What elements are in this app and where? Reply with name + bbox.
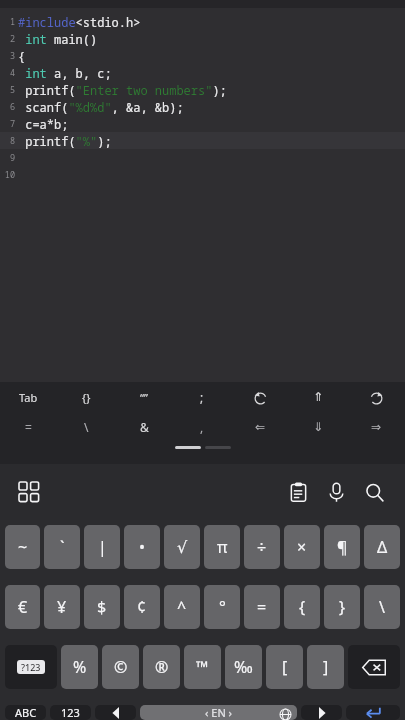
button[interactable]: Move left	[95, 705, 136, 720]
staticText: ®	[155, 656, 169, 678]
button[interactable]: ABC	[5, 705, 46, 720]
staticText: =	[25, 419, 32, 435]
staticText: ⇐	[255, 420, 266, 434]
button[interactable]: °	[204, 585, 240, 629]
button[interactable]: ?123	[5, 645, 57, 689]
button[interactable]: Clipboard	[279, 473, 317, 511]
button[interactable]: ×	[284, 525, 320, 569]
button[interactable]: %	[61, 645, 98, 689]
staticText: ‹ EN ›	[205, 705, 233, 720]
button[interactable]: ^	[164, 585, 200, 629]
button[interactable]: ⇓	[289, 412, 347, 442]
button[interactable]: [	[266, 645, 303, 689]
staticText: ×	[297, 536, 307, 558]
staticText: ⇒	[371, 420, 382, 434]
button[interactable]: Enter	[346, 705, 400, 720]
button[interactable]: ~	[5, 525, 40, 569]
button[interactable]: 3	[0, 47, 405, 64]
button[interactable]: ⇒	[347, 412, 405, 442]
button[interactable]: Tab	[0, 382, 57, 412]
button[interactable]: ]	[307, 645, 344, 689]
staticText: 123	[61, 705, 80, 720]
button[interactable]: •	[124, 525, 160, 569]
staticText: \	[379, 596, 385, 618]
button[interactable]: =	[244, 585, 280, 629]
button[interactable]: 123	[50, 705, 91, 720]
staticText: ;	[200, 389, 204, 405]
staticText: scanf("%d%d", &a, &b);	[18, 99, 184, 115]
button[interactable]: ¥	[44, 585, 80, 629]
button[interactable]: 10	[0, 166, 405, 183]
button[interactable]: 8	[0, 132, 405, 149]
staticText: &	[140, 419, 149, 435]
button[interactable]: &	[115, 412, 173, 442]
button[interactable]: 2	[0, 30, 405, 47]
button[interactable]: Move right	[301, 705, 342, 720]
button[interactable]: ¢	[124, 585, 160, 629]
button[interactable]: Δ	[364, 525, 400, 569]
button[interactable]: ;	[173, 382, 231, 412]
staticText: •	[139, 536, 146, 558]
button[interactable]: $	[84, 585, 120, 629]
button[interactable]: ¶	[324, 525, 360, 569]
staticText: printf("Enter two numbers");	[18, 82, 227, 98]
button[interactable]: |	[84, 525, 120, 569]
staticText: π	[217, 536, 228, 558]
staticText: ⇓	[313, 420, 324, 434]
button[interactable]: ®	[143, 645, 180, 689]
staticText: ⇑	[313, 390, 324, 404]
staticText: 9	[0, 152, 15, 164]
button[interactable]: \	[57, 412, 115, 442]
button[interactable]: Search	[355, 473, 393, 511]
staticText: [	[282, 656, 288, 678]
staticText: {}	[82, 390, 91, 405]
button[interactable]: Redo	[347, 382, 405, 412]
button[interactable]: ⇑	[289, 382, 347, 412]
button[interactable]: `	[44, 525, 80, 569]
staticText: 4	[0, 67, 15, 79]
staticText: ¶	[337, 536, 348, 558]
staticText: %	[73, 656, 87, 678]
staticText: ABC	[15, 705, 37, 720]
staticText: |	[98, 536, 107, 558]
staticText: 8	[0, 135, 15, 147]
button[interactable]: ™	[184, 645, 221, 689]
staticText: ‰	[234, 656, 253, 678]
button[interactable]: “”	[115, 382, 173, 412]
button[interactable]: €	[5, 585, 40, 629]
staticText: €	[18, 596, 28, 618]
button[interactable]: Backspace	[348, 645, 400, 689]
button[interactable]: √	[164, 525, 200, 569]
button[interactable]: \	[364, 585, 400, 629]
staticText: ^	[177, 596, 187, 618]
button[interactable]: Undo	[231, 382, 289, 412]
staticText: “”	[140, 390, 148, 405]
button[interactable]: {}	[57, 382, 115, 412]
staticText: }	[339, 596, 346, 618]
staticText: int main()	[18, 31, 98, 47]
button[interactable]: 6	[0, 98, 405, 115]
button[interactable]: 1	[0, 13, 405, 30]
button[interactable]: ©	[102, 645, 139, 689]
staticText: °	[219, 596, 226, 618]
staticText: {	[299, 596, 306, 618]
button[interactable]: Voice input	[317, 473, 355, 511]
button[interactable]: ⇐	[231, 412, 289, 442]
button[interactable]: Keyboard switcher	[12, 475, 46, 509]
button[interactable]: ,	[173, 412, 231, 442]
button[interactable]: ‰	[225, 645, 262, 689]
staticText: Δ	[377, 536, 388, 558]
button[interactable]: =	[0, 412, 57, 442]
staticText: ¢	[137, 596, 147, 618]
button[interactable]: 5	[0, 81, 405, 98]
button[interactable]: Space	[140, 705, 297, 720]
staticText: 6	[0, 101, 15, 113]
button[interactable]: }	[324, 585, 360, 629]
staticText: ,	[200, 419, 204, 435]
button[interactable]: {	[284, 585, 320, 629]
button[interactable]: ÷	[244, 525, 280, 569]
button[interactable]: π	[204, 525, 240, 569]
button[interactable]: 4	[0, 64, 405, 81]
button[interactable]: 7	[0, 115, 405, 132]
